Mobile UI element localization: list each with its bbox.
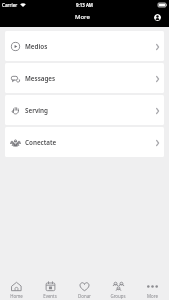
button[interactable]: Profile [154, 14, 161, 21]
staticText: Home [10, 293, 23, 299]
staticText: Conectate [25, 138, 57, 147]
staticText: Serving [25, 106, 49, 115]
staticText: Messages [25, 74, 56, 83]
button[interactable]: Donar [67, 280, 101, 300]
staticText: Events [43, 293, 57, 299]
button[interactable]: Medios [5, 31, 164, 61]
button[interactable]: Home [0, 280, 33, 300]
staticText: Medios [25, 42, 48, 51]
button[interactable]: Conectate [5, 127, 164, 157]
button[interactable]: Serving [5, 95, 164, 125]
staticText: More [75, 13, 90, 21]
staticText: 9:13 AM [76, 2, 93, 8]
staticText: Groups [110, 293, 126, 299]
staticText: Donar [78, 293, 91, 299]
button[interactable]: Groups [101, 280, 135, 300]
button[interactable]: More [135, 280, 169, 300]
button[interactable]: Events [33, 280, 67, 300]
staticText: Carrier [2, 2, 18, 8]
button[interactable]: Messages [5, 63, 164, 93]
staticText: More [147, 293, 158, 299]
